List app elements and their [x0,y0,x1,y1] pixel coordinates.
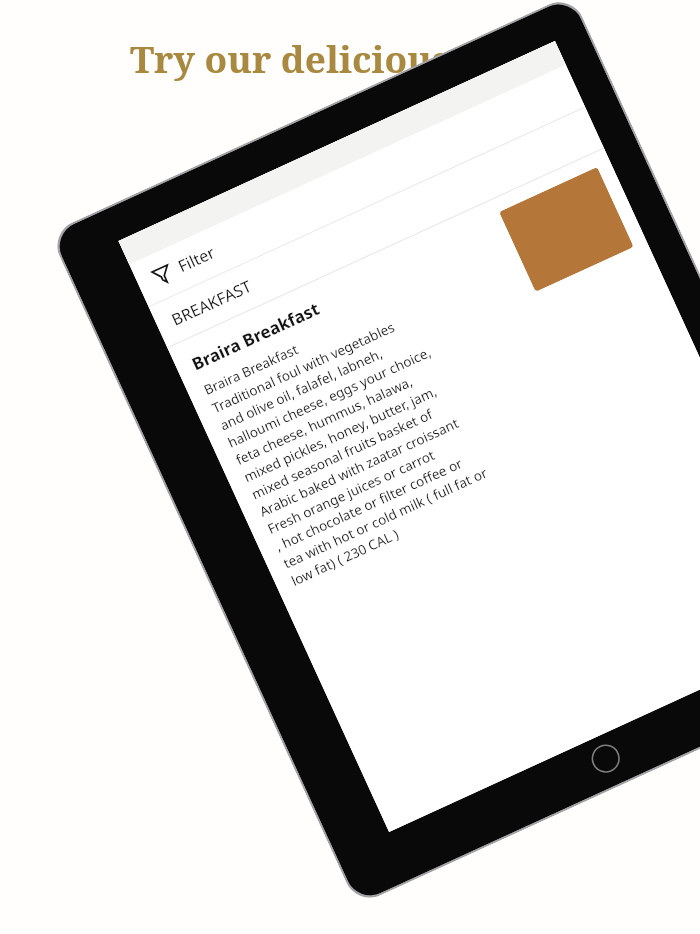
button[interactable]: Home [586,739,625,778]
button[interactable]: Braira Breakfast [168,148,700,596]
staticText: Filter [174,241,218,277]
staticText: Braira Breakfast [188,297,323,375]
staticText: Braira Breakfast Traditional foul with v… [201,290,499,590]
button[interactable]: Filter [129,65,585,306]
button[interactable]: BREAKFAST [149,107,604,347]
staticText: BREAKFAST [168,275,255,331]
staticText: Try our delicious meals [0,33,700,83]
